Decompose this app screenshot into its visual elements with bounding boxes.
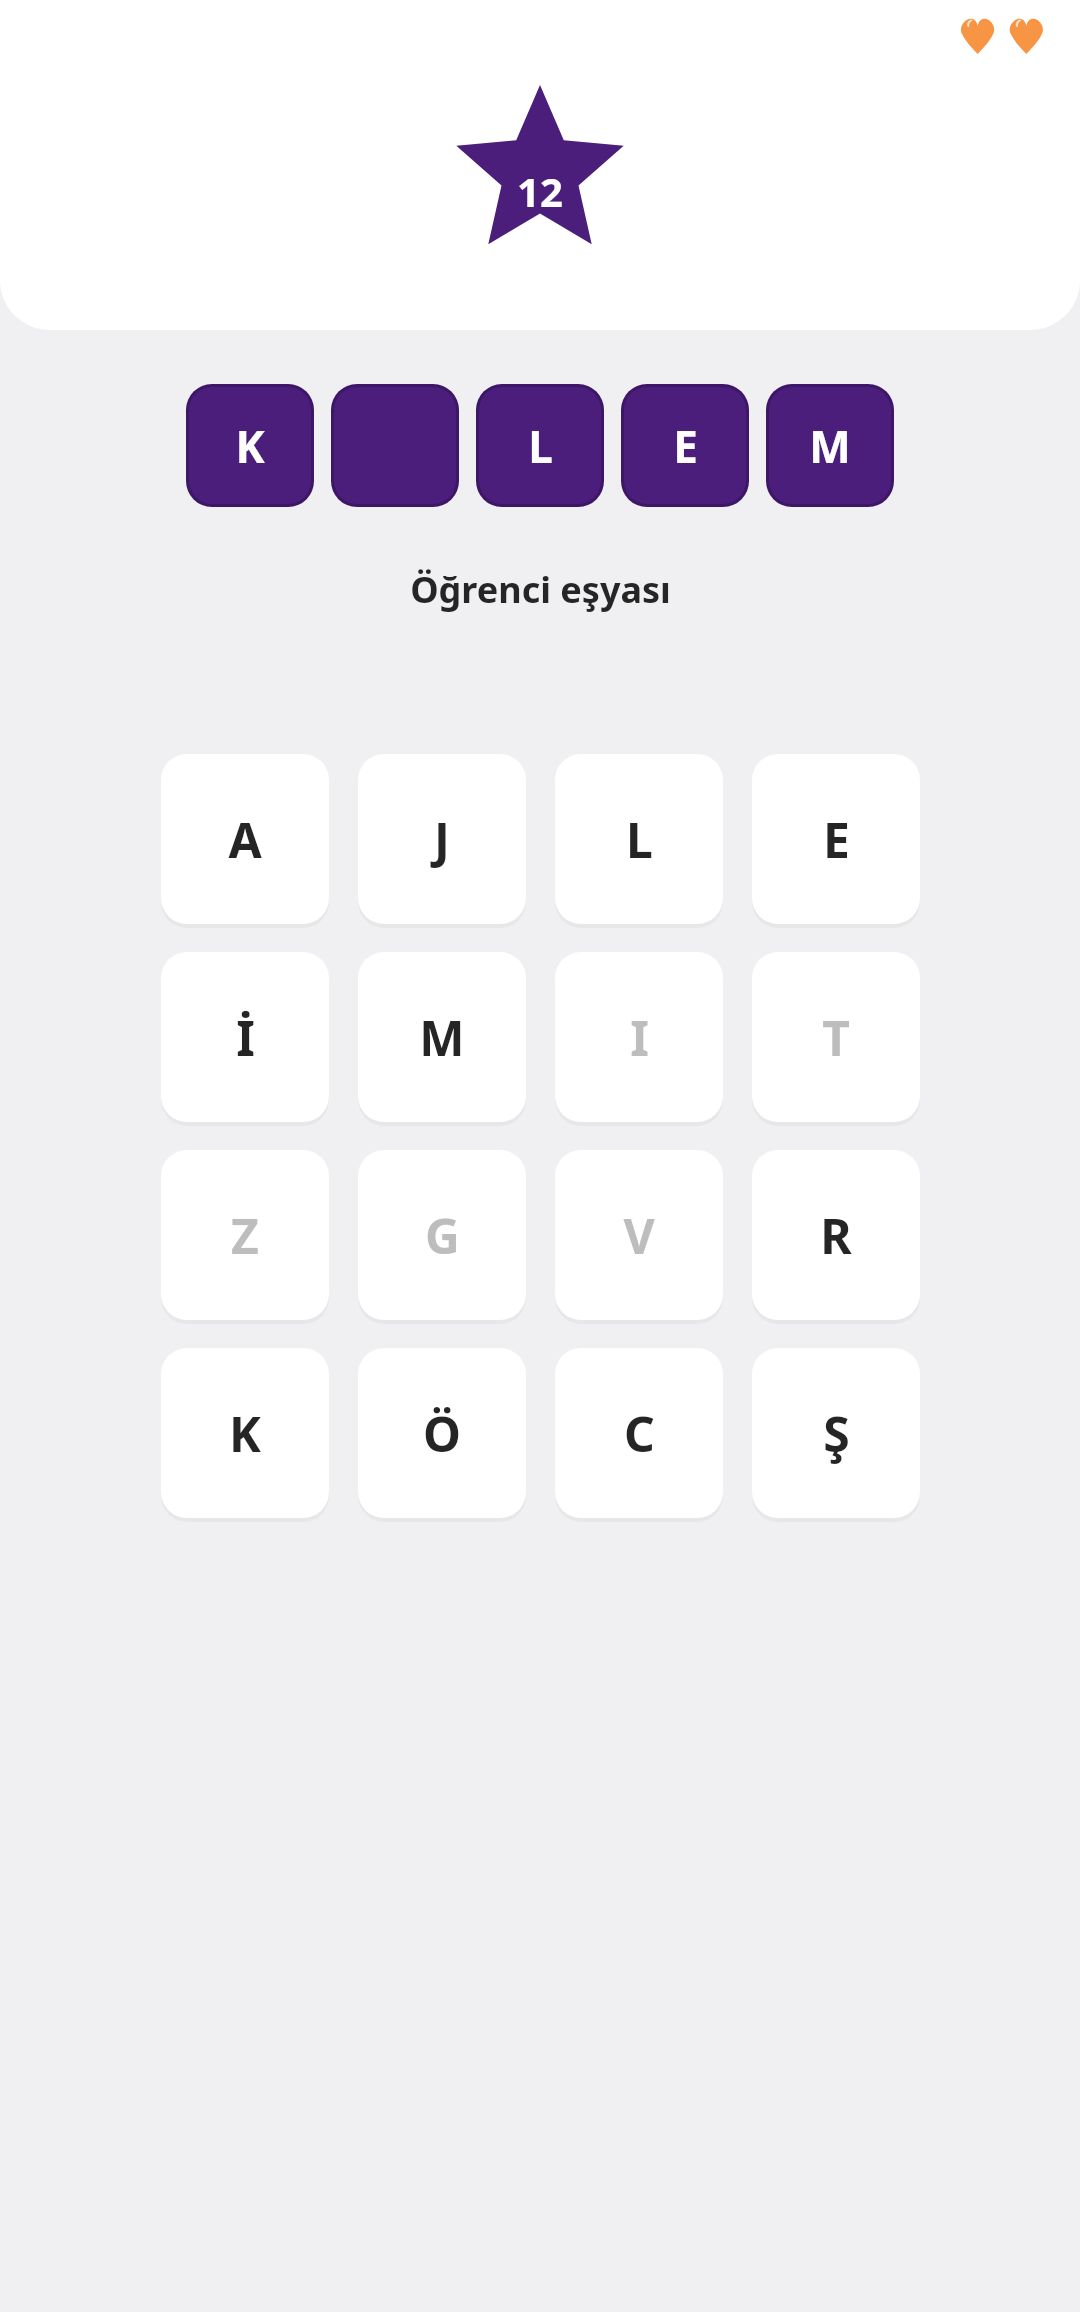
- staticText: I: [630, 1005, 649, 1070]
- staticText: A: [228, 807, 262, 872]
- button[interactable]: T: [752, 952, 920, 1122]
- button[interactable]: L: [555, 754, 723, 924]
- staticText: K: [235, 416, 265, 476]
- staticText: K: [229, 1401, 261, 1466]
- staticText: L: [528, 416, 553, 476]
- staticText: R: [820, 1203, 852, 1268]
- button[interactable]: J: [358, 754, 526, 924]
- staticText: M: [419, 1005, 465, 1070]
- button[interactable]: I: [555, 952, 723, 1122]
- staticText: Ö: [423, 1401, 461, 1466]
- staticText: E: [823, 807, 850, 872]
- staticText: 12: [517, 164, 563, 218]
- staticText: Öğrenci eşyası: [410, 565, 671, 614]
- button[interactable]: V: [555, 1150, 723, 1320]
- button[interactable]: İ: [161, 952, 329, 1122]
- button[interactable]: C: [555, 1348, 723, 1518]
- staticText: J: [434, 807, 450, 872]
- button[interactable]: K: [161, 1348, 329, 1518]
- staticText: İ: [236, 1005, 255, 1070]
- staticText: M: [809, 416, 851, 476]
- staticText: E: [673, 416, 698, 476]
- staticText: C: [624, 1401, 655, 1466]
- button[interactable]: R: [752, 1150, 920, 1320]
- staticText: L: [626, 807, 653, 872]
- button[interactable]: G: [358, 1150, 526, 1320]
- staticText: G: [425, 1203, 460, 1268]
- button[interactable]: Ş: [752, 1348, 920, 1518]
- button[interactable]: M: [358, 952, 526, 1122]
- button[interactable]: L: [479, 387, 601, 504]
- staticText: Z: [231, 1203, 259, 1268]
- other: Lives: 2 hearts: [960, 14, 1044, 54]
- button[interactable]: Ö: [358, 1348, 526, 1518]
- staticText: V: [623, 1203, 655, 1268]
- button[interactable]: E: [752, 754, 920, 924]
- button[interactable]: M: [769, 387, 891, 504]
- button[interactable]: [334, 387, 456, 504]
- button[interactable]: E: [624, 387, 746, 504]
- staticText: Ş: [823, 1401, 850, 1466]
- button[interactable]: K: [189, 387, 311, 504]
- staticText: T: [822, 1005, 850, 1070]
- button[interactable]: A: [161, 754, 329, 924]
- button[interactable]: Z: [161, 1150, 329, 1320]
